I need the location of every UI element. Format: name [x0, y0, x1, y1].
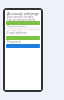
button[interactable] [6, 36, 40, 40]
staticText: Display name [7, 25, 27, 29]
button[interactable] [6, 21, 40, 25]
staticText: Account settings [7, 11, 39, 16]
staticText: Tap to edit any field [7, 18, 35, 22]
button[interactable] [6, 44, 40, 48]
staticText: Email address [7, 31, 27, 35]
staticText: Your profile details [7, 15, 34, 19]
staticText: Password [7, 40, 21, 44]
